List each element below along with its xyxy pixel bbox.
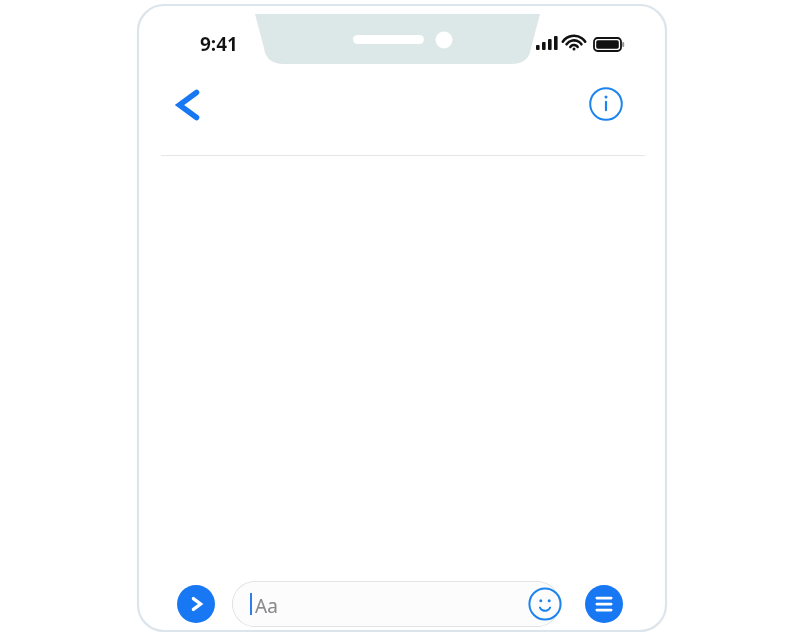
button[interactable]: Back: [163, 82, 209, 128]
staticText: 9:41: [200, 31, 238, 57]
button[interactable]: Conversation details: [588, 86, 624, 122]
staticText: Aa: [255, 593, 278, 619]
button[interactable]: Aa: [232, 581, 560, 627]
button[interactable]: Emoji: [527, 586, 563, 622]
button[interactable]: Send: [177, 585, 215, 623]
button[interactable]: More options: [585, 585, 623, 623]
